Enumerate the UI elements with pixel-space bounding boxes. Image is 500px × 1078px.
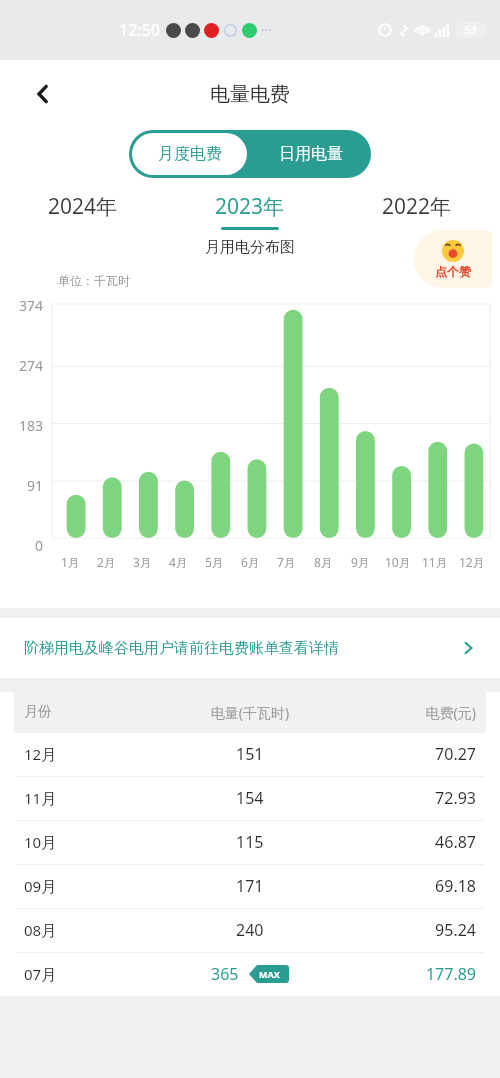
staticText: 151 — [236, 743, 264, 765]
button[interactable]: 日用电量 — [250, 130, 371, 178]
staticText: 53 — [465, 23, 477, 37]
button[interactable]: 07月 — [0, 952, 500, 996]
staticText: 274 — [19, 356, 44, 375]
button[interactable]: 点个赞 — [414, 230, 492, 288]
staticText: 69.18 — [335, 875, 476, 897]
staticText: 10月 — [385, 554, 411, 570]
button[interactable]: 12月 — [0, 732, 500, 776]
staticText: 4月 — [169, 554, 188, 570]
staticText: 月份 — [24, 703, 165, 721]
button[interactable]: 阶梯用电及峰谷电用户请前往电费账单查看详情 — [0, 618, 500, 678]
staticText: 91 — [27, 476, 44, 495]
staticText: 电量(千瓦时) — [165, 703, 335, 722]
button[interactable]: 2024年 — [0, 192, 166, 230]
staticText: 72.93 — [335, 787, 476, 809]
staticText: 2024年 — [48, 192, 118, 221]
staticText: 11月 — [24, 788, 165, 808]
staticText: 12:50 — [119, 19, 160, 41]
staticText: 171 — [236, 875, 264, 897]
staticText: 9月 — [351, 554, 370, 570]
staticText: 2月 — [97, 554, 116, 570]
button[interactable]: Back — [22, 73, 64, 115]
staticText: 374 — [19, 296, 44, 315]
staticText: 12月 — [24, 744, 165, 764]
staticText: 46.87 — [335, 831, 476, 853]
staticText: 月度电费 — [158, 144, 222, 164]
staticText: 单位：千瓦时 — [58, 273, 130, 288]
button[interactable]: 08月 — [0, 908, 500, 952]
staticText: 月用电分布图 — [0, 238, 500, 257]
button[interactable]: 09月 — [0, 864, 500, 908]
staticText: 0 — [35, 536, 44, 555]
staticText: 177.89 — [335, 963, 476, 985]
staticText: 365 — [211, 963, 239, 985]
staticText: 点个赞 — [435, 264, 471, 279]
staticText: 09月 — [24, 876, 165, 896]
staticText: ··· — [261, 21, 272, 39]
staticText: 2022年 — [382, 192, 452, 221]
staticText: MAX — [259, 968, 280, 980]
staticText: 07月 — [24, 964, 165, 984]
staticText: 154 — [236, 787, 264, 809]
button[interactable]: 11月 — [0, 776, 500, 820]
staticText: 6月 — [241, 554, 260, 570]
staticText: 7月 — [277, 554, 296, 570]
staticText: 8月 — [314, 554, 333, 570]
staticText: 5月 — [205, 554, 224, 570]
button[interactable]: 2023年 — [166, 192, 333, 230]
staticText: 95.24 — [335, 919, 476, 941]
staticText: 日用电量 — [279, 144, 343, 164]
staticText: 阶梯用电及峰谷电用户请前往电费账单查看详情 — [24, 639, 460, 658]
button[interactable]: 10月 — [0, 820, 500, 864]
staticText: 2023年 — [215, 192, 285, 221]
staticText: 11月 — [422, 554, 448, 570]
staticText: 70.27 — [335, 743, 476, 765]
button[interactable]: 2022年 — [333, 192, 500, 230]
staticText: 1月 — [61, 554, 80, 570]
button[interactable]: 月度电费 — [132, 133, 247, 175]
staticText: 115 — [236, 831, 264, 853]
staticText: 12月 — [459, 554, 485, 570]
staticText: 电费(元) — [335, 703, 476, 722]
staticText: 08月 — [24, 920, 165, 940]
staticText: 240 — [236, 919, 264, 941]
staticText: 10月 — [24, 832, 165, 852]
staticText: 电量电费 — [210, 82, 290, 107]
staticText: 3月 — [133, 554, 152, 570]
staticText: 183 — [19, 416, 44, 435]
